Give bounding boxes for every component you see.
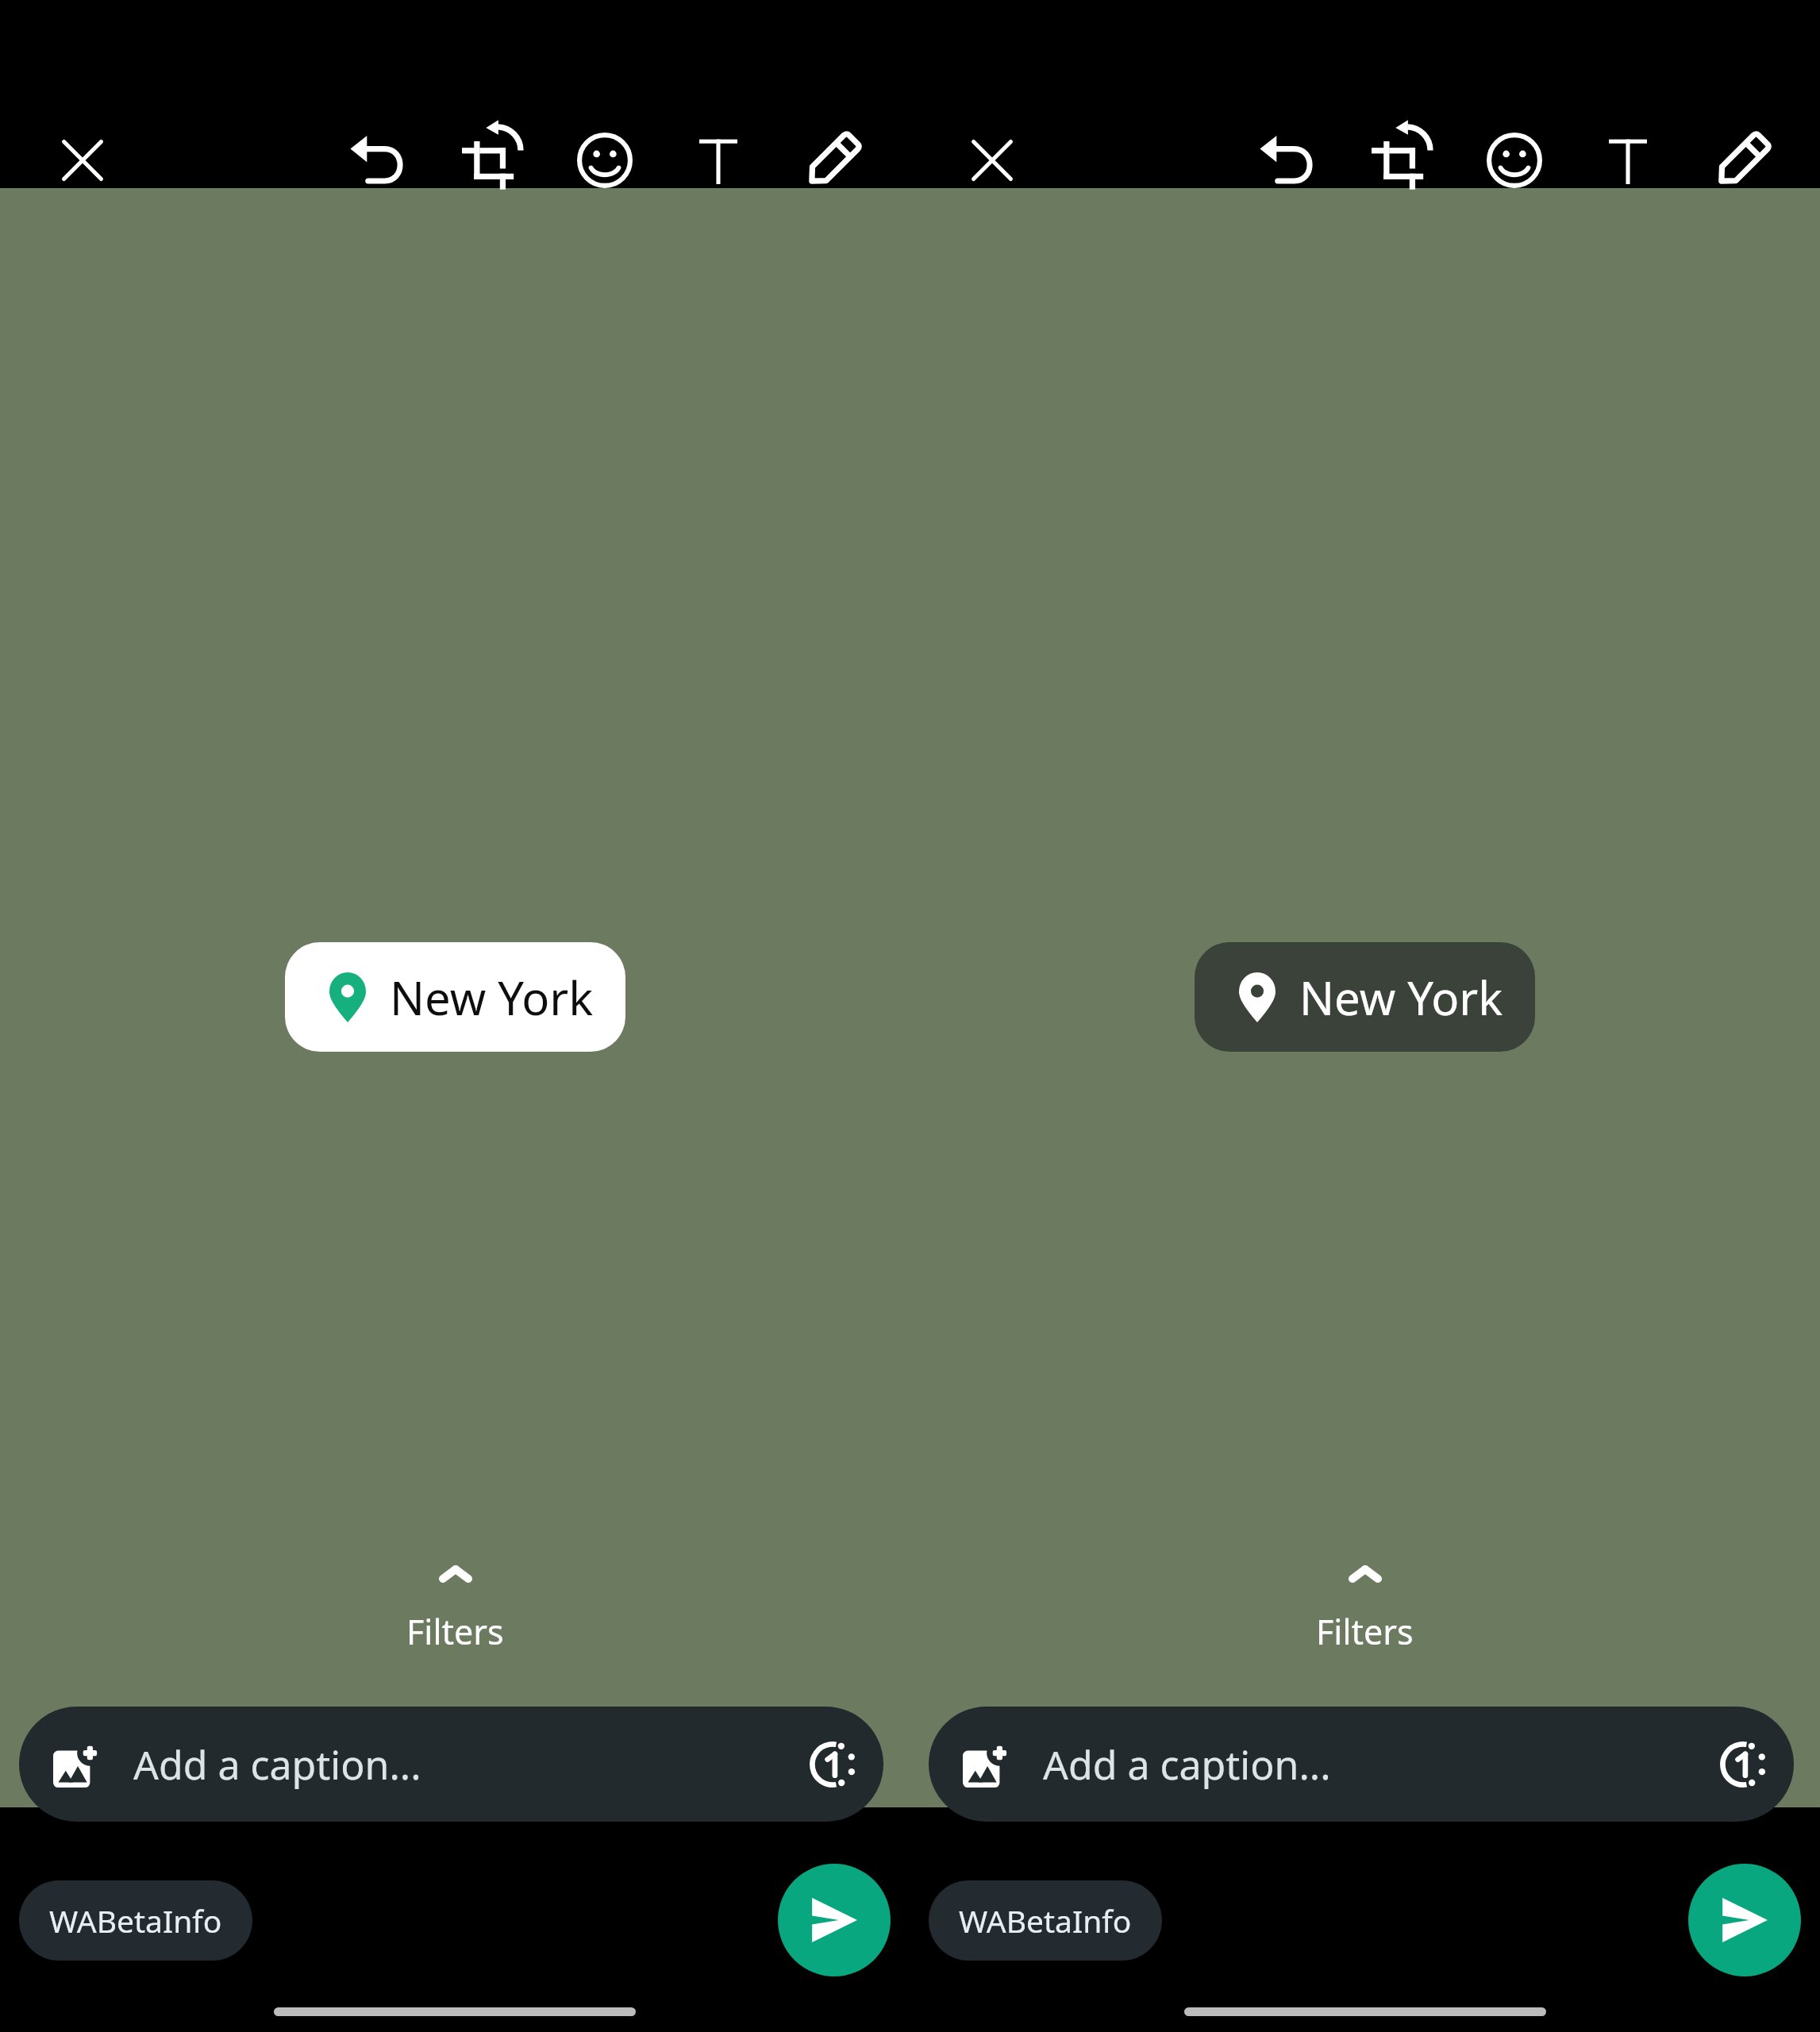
staticText: WABetaInfo	[959, 1899, 1132, 1942]
button[interactable]: WABetaInfo	[929, 1880, 1162, 1961]
button[interactable]: Draw	[1695, 113, 1790, 208]
button[interactable]: Add sticker	[1467, 113, 1562, 208]
button[interactable]: Send	[1688, 1864, 1801, 1976]
button[interactable]: Add sticker	[557, 113, 652, 208]
button[interactable]: Crop and rotate	[1353, 113, 1449, 208]
staticText: Filters	[406, 1608, 504, 1655]
button[interactable]: Draw	[785, 113, 880, 208]
staticText: New York	[1299, 966, 1503, 1029]
button[interactable]: WABetaInfo	[19, 1880, 252, 1961]
button[interactable]: Show filters	[1281, 1561, 1449, 1660]
button[interactable]: Crop and rotate	[444, 113, 539, 208]
button[interactable]: Add text	[671, 113, 766, 208]
button[interactable]: Send	[778, 1864, 891, 1976]
staticText: Add a caption...	[133, 1738, 421, 1791]
staticText: New York	[390, 966, 594, 1029]
staticText: WABetaInfo	[49, 1899, 222, 1942]
button[interactable]: Undo	[330, 113, 425, 208]
button[interactable]: Close	[35, 113, 130, 208]
button[interactable]: Add a caption...	[19, 1707, 883, 1822]
button[interactable]: Add a caption...	[929, 1707, 1794, 1822]
button[interactable]: Add text	[1580, 113, 1676, 208]
button[interactable]: New York	[1195, 942, 1535, 1052]
button[interactable]: Close	[945, 113, 1040, 208]
button[interactable]: Show filters	[371, 1561, 539, 1660]
staticText: Add a caption...	[1043, 1738, 1331, 1791]
button[interactable]: Undo	[1240, 113, 1335, 208]
staticText: Filters	[1316, 1608, 1414, 1655]
button[interactable]: New York	[285, 942, 625, 1052]
